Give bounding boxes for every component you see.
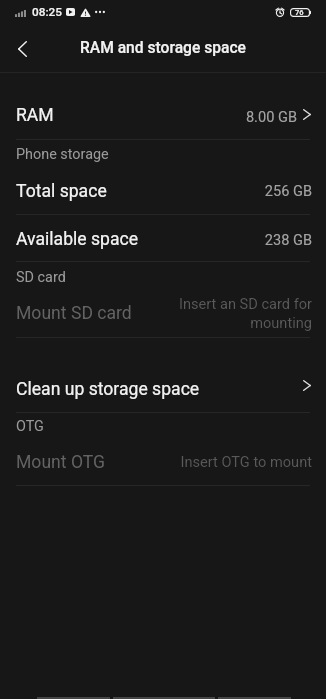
button[interactable]: Available space [0, 215, 326, 262]
staticText: 238 GB [192, 231, 312, 248]
button[interactable]: RAM [0, 73, 326, 139]
button[interactable]: Total space [0, 166, 326, 214]
staticText: Available space [16, 229, 139, 250]
staticText: 08:25 [32, 5, 62, 19]
staticText: Phone storage [16, 146, 109, 163]
button[interactable]: Mount SD card [0, 287, 326, 337]
staticText: OTG [16, 418, 44, 435]
staticText: Total space [16, 181, 107, 202]
staticText: 76 [295, 8, 304, 17]
button[interactable]: Mount OTG [0, 437, 326, 485]
staticText: 8.00 GB [177, 108, 297, 125]
staticText: RAM and storage space [0, 39, 326, 57]
staticText: RAM [16, 105, 54, 126]
staticText: Mount OTG [16, 452, 106, 473]
staticText: Clean up storage space [16, 379, 200, 400]
staticText: SD card [16, 269, 66, 286]
staticText: Insert OTG to mount [172, 453, 312, 470]
staticText: Mount SD card [16, 303, 132, 324]
staticText: 256 GB [192, 182, 312, 199]
button[interactable]: Back [6, 33, 38, 65]
staticText: Insert an SD card for mounting [178, 295, 312, 332]
button[interactable]: Clean up storage space [0, 360, 326, 412]
